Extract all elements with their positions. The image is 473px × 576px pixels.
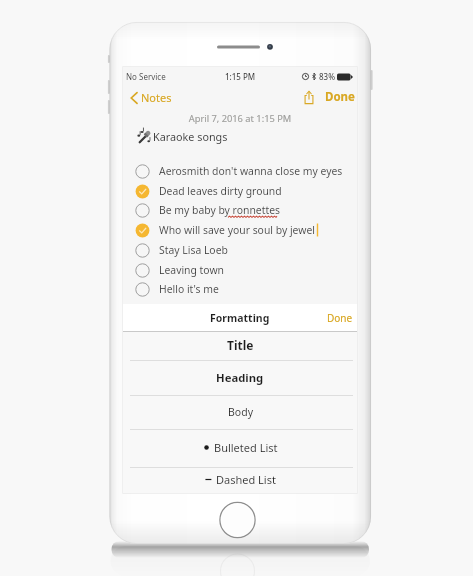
staticText: Done [327,311,353,325]
button[interactable]: Share [302,89,316,106]
staticText: Formatting [210,311,270,325]
staticText: Karaoke songs [153,129,228,144]
staticText: Who will save your soul by jewel [159,223,315,237]
staticText: Stay Lisa Loeb [159,243,228,257]
staticText: Leaving town [159,263,225,277]
button[interactable]: Who will save your soul by jewel [123,220,357,240]
button[interactable]: Done [324,87,356,107]
staticText: Notes [141,90,172,105]
button[interactable]: Heading [123,361,357,395]
staticText: Dead leaves dirty ground [159,184,282,198]
staticText: 1:15 PM [225,71,256,82]
staticText: Body [228,405,253,419]
staticText: April 7, 2016 at 1:15 PM [123,112,357,125]
staticText: No Service [126,71,166,82]
button[interactable]: Title [123,332,357,360]
button[interactable]: Dashed List [123,468,357,493]
button[interactable]: Be my baby by ronnettes [123,200,357,220]
button[interactable]: Hello it's me [123,279,357,299]
button[interactable]: Dead leaves dirty ground [123,181,357,201]
staticText: Title [227,337,254,353]
button[interactable]: Stay Lisa Loeb [123,240,357,260]
button[interactable]: Aerosmith don't wanna close my eyes [123,161,357,181]
button[interactable]: Bulleted List [123,430,357,467]
button[interactable]: Notes [123,88,176,107]
staticText: Hello it's me [159,282,219,296]
button[interactable]: Done [323,308,357,328]
button[interactable]: Body [123,396,357,429]
staticText: Heading [216,370,264,385]
staticText: Dashed List [216,472,276,487]
staticText: Be my baby by ronnettes [159,203,281,217]
button[interactable]: Leaving town [123,260,357,280]
staticText: Done [325,89,355,105]
staticText: 83% [319,71,335,82]
staticText: Aerosmith don't wanna close my eyes [159,164,343,178]
staticText: Bulleted List [214,440,278,455]
